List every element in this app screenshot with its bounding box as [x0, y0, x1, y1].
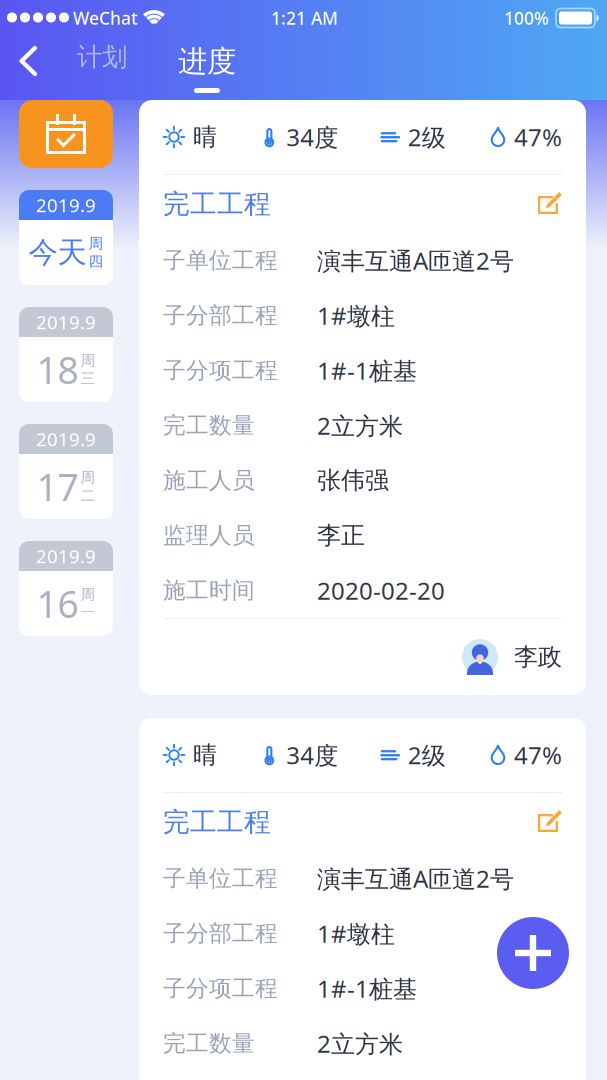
staticText: 100% [504, 6, 549, 29]
staticText: 四 [88, 252, 103, 270]
staticText: 晴 [193, 740, 217, 770]
staticText: 子分项工程 [163, 975, 278, 1002]
button[interactable]: 2019.9 [19, 190, 113, 285]
staticText: 2立方米 [317, 410, 403, 441]
staticText: 1#墩柱 [317, 918, 395, 949]
staticText: 2019.9 [36, 427, 96, 451]
staticText: 子分项工程 [163, 357, 278, 384]
staticText: 2019.9 [36, 193, 96, 217]
staticText: 2立方米 [317, 1028, 403, 1059]
staticText: 47% [514, 121, 562, 153]
staticText: 晴 [193, 122, 217, 152]
staticText: 子分部工程 [163, 302, 278, 329]
staticText: 1#墩柱 [317, 300, 395, 331]
staticText: 张伟强 [317, 466, 389, 495]
staticText: 16 [36, 579, 78, 628]
staticText: 子分部工程 [163, 920, 278, 947]
button[interactable]: Back [0, 32, 56, 90]
staticText: 34度 [286, 739, 338, 771]
staticText: 47% [514, 739, 562, 771]
staticText: 二 [80, 486, 95, 504]
button[interactable]: Add record [497, 917, 569, 989]
staticText: 今天 [28, 234, 86, 270]
staticText: 完工工程 [163, 806, 271, 838]
staticText: 2020-02-20 [317, 575, 445, 606]
button[interactable]: 2019.9 [19, 541, 113, 636]
staticText: 2级 [408, 121, 446, 153]
button[interactable]: 计划 [66, 30, 138, 84]
staticText: 17 [36, 462, 78, 511]
staticText: 施工时间 [163, 577, 255, 604]
staticText: 周 [80, 585, 95, 603]
staticText: 进度 [178, 43, 236, 79]
staticText: 三 [80, 369, 95, 387]
staticText: 李正 [317, 521, 365, 550]
staticText: 一 [80, 603, 95, 621]
staticText: 周 [80, 351, 95, 369]
staticText: 计划 [77, 41, 127, 72]
staticText: 2019.9 [36, 310, 96, 334]
staticText: 完工数量 [163, 1030, 255, 1057]
staticText: 李政 [514, 642, 562, 672]
staticText: 完工数量 [163, 412, 255, 439]
staticText: 演丰互通A匝道2号 [317, 245, 514, 276]
staticText: 周 [80, 468, 95, 486]
staticText: 1#-1桩基 [317, 355, 417, 386]
staticText: 子单位工程 [163, 247, 278, 274]
staticText: 2019.9 [36, 544, 96, 568]
staticText: 施工人员 [163, 467, 255, 494]
staticText: 监理人员 [163, 522, 255, 549]
staticText: 1#-1桩基 [317, 973, 417, 1004]
button[interactable]: 2019.9 [19, 307, 113, 402]
staticText: 周 [88, 234, 103, 252]
button[interactable]: Edit [538, 192, 562, 216]
staticText: 2级 [408, 739, 446, 771]
staticText: 子单位工程 [163, 865, 278, 892]
button[interactable]: 2019.9 [19, 424, 113, 519]
staticText: 18 [36, 345, 78, 394]
button[interactable]: Calendar [19, 100, 113, 168]
staticText: 演丰互通A匝道2号 [317, 863, 514, 894]
staticText: 完工工程 [163, 188, 271, 220]
staticText: WeChat [73, 6, 138, 29]
button[interactable]: Edit [538, 810, 562, 834]
staticText: 1:21 AM [271, 6, 338, 29]
button[interactable]: 进度 [169, 43, 245, 105]
staticText: 34度 [286, 121, 338, 153]
